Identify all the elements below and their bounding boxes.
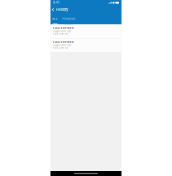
button[interactable]: FLAG EXPIRED: [50, 25, 121, 38]
staticText: ALL: [52, 17, 58, 20]
staticText: Hulk Linen 185: [53, 47, 68, 49]
button[interactable]: FLAG EXPIRED: [50, 39, 121, 52]
staticText: PENDING: [62, 17, 75, 20]
staticText: Hulk Linen 185: [53, 33, 68, 35]
button[interactable]: PENDING: [62, 14, 75, 25]
button[interactable]: Back: [51, 6, 55, 14]
staticText: FLAG EXPIRED: [53, 26, 74, 29]
staticText: Google Form 1329: [53, 30, 71, 33]
staticText: History: [56, 7, 68, 12]
staticText: Google Form 1329: [53, 44, 71, 47]
staticText: 9:41: [53, 1, 59, 4]
staticText: FLAG EXPIRED: [53, 40, 74, 44]
button[interactable]: ALL: [52, 14, 58, 25]
